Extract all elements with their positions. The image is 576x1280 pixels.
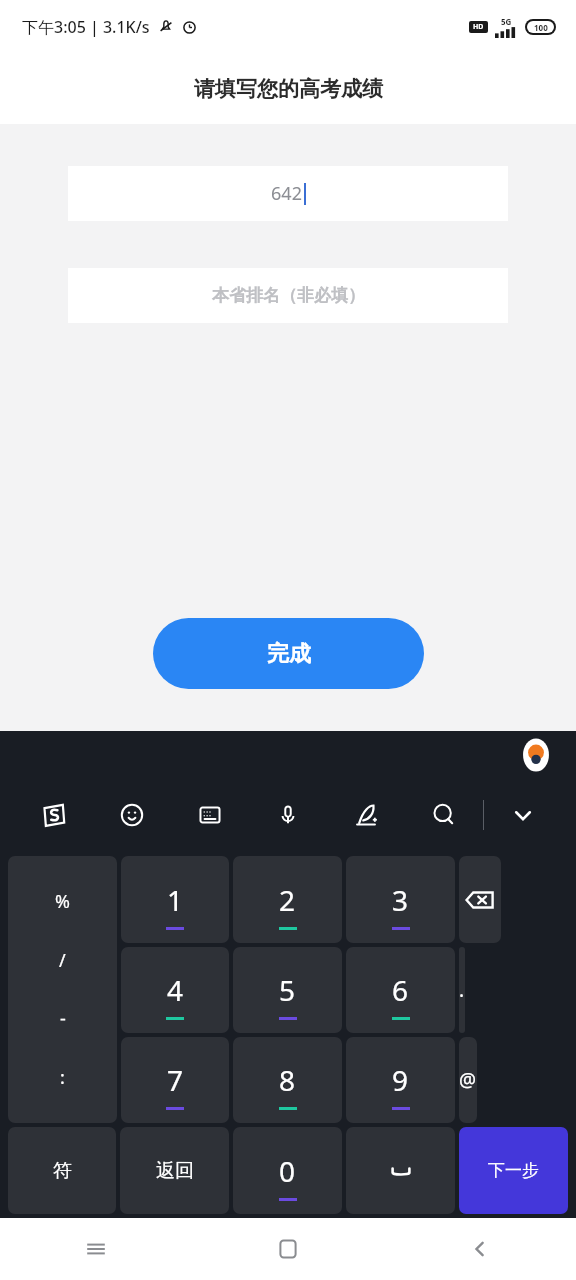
button[interactable]: 返回 — [120, 1127, 229, 1214]
button[interactable]: 5 — [233, 947, 342, 1033]
button[interactable]: 1 — [121, 856, 229, 943]
staticText: 完成 — [267, 640, 311, 668]
staticText: 5 — [279, 971, 296, 1009]
staticText: 5G — [501, 16, 512, 27]
staticText: 下午3:05 | 3.1K/s — [22, 16, 150, 38]
button[interactable]: 2 — [233, 856, 342, 943]
staticText: : — [60, 1065, 65, 1090]
button[interactable]: Sogou — [14, 792, 93, 838]
button[interactable]: Search — [405, 792, 483, 838]
staticText: % — [55, 889, 70, 914]
staticText: HD — [473, 22, 484, 32]
staticText: 4 — [167, 971, 184, 1009]
staticText: 7 — [167, 1061, 184, 1099]
button[interactable]: Home — [192, 1218, 384, 1280]
button[interactable]: . — [459, 947, 465, 1033]
staticText: 下一步 — [488, 1160, 539, 1181]
button[interactable]: @ — [459, 1037, 477, 1123]
staticText: 6 — [392, 971, 409, 1009]
staticText: 8 — [279, 1061, 296, 1099]
staticText: 符 — [53, 1159, 72, 1183]
staticText: . — [459, 977, 465, 1003]
button[interactable]: 6 — [346, 947, 455, 1033]
button[interactable]: 符 — [8, 1127, 116, 1214]
button[interactable]: 下一步 — [459, 1127, 568, 1214]
button[interactable]: Emoji — [93, 792, 171, 838]
staticText: 100 — [534, 22, 548, 33]
button[interactable]: Delete — [459, 856, 501, 943]
staticText: @ — [459, 1067, 477, 1093]
button[interactable]: 完成 — [153, 618, 424, 689]
button[interactable]: 本省排名（非必填） — [68, 268, 508, 323]
button[interactable]: Keyboard — [171, 792, 249, 838]
staticText: / — [59, 948, 66, 973]
button[interactable]: Assistant — [518, 737, 554, 773]
button[interactable]: Recents — [0, 1218, 192, 1280]
button[interactable]: % — [8, 856, 117, 1123]
staticText: 返回 — [156, 1159, 194, 1183]
button[interactable]: 3 — [346, 856, 455, 943]
staticText: 642 — [271, 181, 302, 206]
staticText: 0 — [279, 1152, 296, 1190]
staticText: 9 — [392, 1061, 409, 1099]
staticText: 3 — [392, 881, 409, 919]
staticText: 1 — [167, 881, 184, 919]
staticText: 本省排名（非必填） — [212, 285, 365, 306]
button[interactable]: 642 — [68, 166, 508, 221]
button[interactable]: Handwriting — [327, 792, 405, 838]
button[interactable]: 4 — [121, 947, 229, 1033]
button[interactable]: Hide keyboard — [484, 792, 562, 838]
staticText: - — [60, 1006, 66, 1031]
button[interactable]: 7 — [121, 1037, 229, 1123]
button[interactable]: 8 — [233, 1037, 342, 1123]
button[interactable]: Space — [346, 1127, 455, 1214]
button[interactable]: 0 — [233, 1127, 342, 1214]
button[interactable]: 9 — [346, 1037, 455, 1123]
staticText: 2 — [279, 881, 296, 919]
staticText: 请填写您的高考成绩 — [194, 76, 383, 102]
button[interactable]: Back — [384, 1218, 576, 1280]
button[interactable]: Voice — [249, 792, 327, 838]
